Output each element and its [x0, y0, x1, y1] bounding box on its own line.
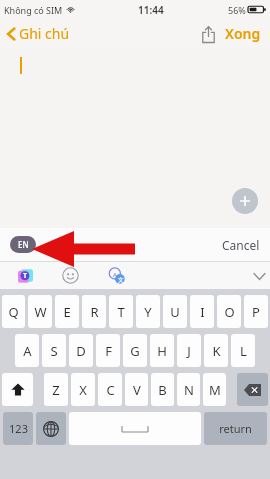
- staticText: T: [23, 271, 28, 281]
- staticText: R: [90, 303, 99, 321]
- staticText: F: [105, 342, 112, 360]
- button[interactable]: B: [151, 373, 174, 406]
- staticText: J: [187, 342, 191, 360]
- button[interactable]: Z: [44, 373, 68, 406]
- button[interactable]: EN: [10, 236, 36, 253]
- staticText: U: [170, 303, 180, 321]
- staticText: return: [219, 421, 252, 436]
- button[interactable]: H: [150, 334, 174, 367]
- button[interactable]: Y: [136, 295, 160, 328]
- button[interactable]: Q: [2, 295, 25, 328]
- staticText: Q: [8, 303, 19, 321]
- button[interactable]: V: [125, 373, 148, 406]
- button[interactable]: U: [163, 295, 187, 328]
- staticText: W: [34, 303, 47, 321]
- button[interactable]: E: [55, 295, 79, 328]
- button[interactable]: Space: [69, 412, 201, 445]
- staticText: X: [79, 381, 87, 399]
- staticText: C: [106, 381, 115, 399]
- button[interactable]: Next keyboard: [36, 412, 66, 445]
- button[interactable]: P: [244, 295, 268, 328]
- button[interactable]: Xong: [223, 24, 263, 43]
- button[interactable]: W: [28, 295, 52, 328]
- staticText: A: [23, 342, 32, 360]
- staticText: Xong: [225, 24, 261, 43]
- staticText: P: [252, 303, 260, 321]
- button[interactable]: M: [203, 373, 226, 406]
- button[interactable]: Stickers: [62, 267, 79, 284]
- button[interactable]: 123: [3, 412, 33, 445]
- button[interactable]: Add attachment: [232, 188, 258, 214]
- staticText: Z: [52, 381, 60, 399]
- button[interactable]: K: [204, 334, 228, 367]
- button[interactable]: C: [98, 373, 122, 406]
- staticText: 11:44: [138, 3, 164, 17]
- staticText: 文: [118, 276, 124, 284]
- button[interactable]: N: [177, 373, 200, 406]
- staticText: Không có SIM: [4, 4, 63, 16]
- staticText: 56%: [228, 4, 246, 16]
- button[interactable]: I: [190, 295, 214, 328]
- button[interactable]: D: [69, 334, 93, 367]
- button[interactable]: return: [204, 412, 267, 445]
- staticText: K: [212, 342, 221, 360]
- button[interactable]: Shift: [2, 373, 33, 406]
- button[interactable]: Ghi chú: [7, 24, 70, 43]
- staticText: T: [117, 303, 125, 321]
- button[interactable]: Translate: [108, 267, 126, 285]
- button[interactable]: Share: [197, 22, 219, 46]
- staticText: H: [157, 342, 167, 360]
- staticText: E: [63, 303, 71, 321]
- staticText: Ghi chú: [19, 24, 70, 43]
- button[interactable]: X: [71, 373, 95, 406]
- staticText: S: [50, 342, 58, 360]
- staticText: D: [76, 342, 86, 360]
- button[interactable]: Translate app: [18, 268, 33, 283]
- button[interactable]: T: [109, 295, 133, 328]
- staticText: V: [133, 381, 141, 399]
- staticText: B: [158, 381, 167, 399]
- staticText: Cancel: [222, 237, 260, 253]
- button[interactable]: Delete: [237, 373, 268, 406]
- button[interactable]: R: [82, 295, 106, 328]
- button[interactable]: Cancel: [222, 237, 260, 253]
- staticText: 123: [9, 421, 28, 436]
- button[interactable]: S: [42, 334, 66, 367]
- button[interactable]: G: [123, 334, 147, 367]
- button[interactable]: J: [177, 334, 201, 367]
- staticText: O: [224, 303, 235, 321]
- button[interactable]: O: [217, 295, 241, 328]
- staticText: L: [240, 342, 247, 360]
- staticText: A: [113, 271, 117, 279]
- staticText: EN: [18, 239, 29, 250]
- button[interactable]: F: [96, 334, 120, 367]
- staticText: I: [200, 303, 205, 321]
- button[interactable]: L: [231, 334, 255, 367]
- button[interactable]: Collapse: [248, 265, 270, 287]
- staticText: G: [130, 342, 140, 360]
- staticText: Y: [144, 303, 152, 321]
- staticText: N: [184, 381, 194, 399]
- button[interactable]: A: [15, 334, 39, 367]
- staticText: M: [209, 381, 221, 399]
